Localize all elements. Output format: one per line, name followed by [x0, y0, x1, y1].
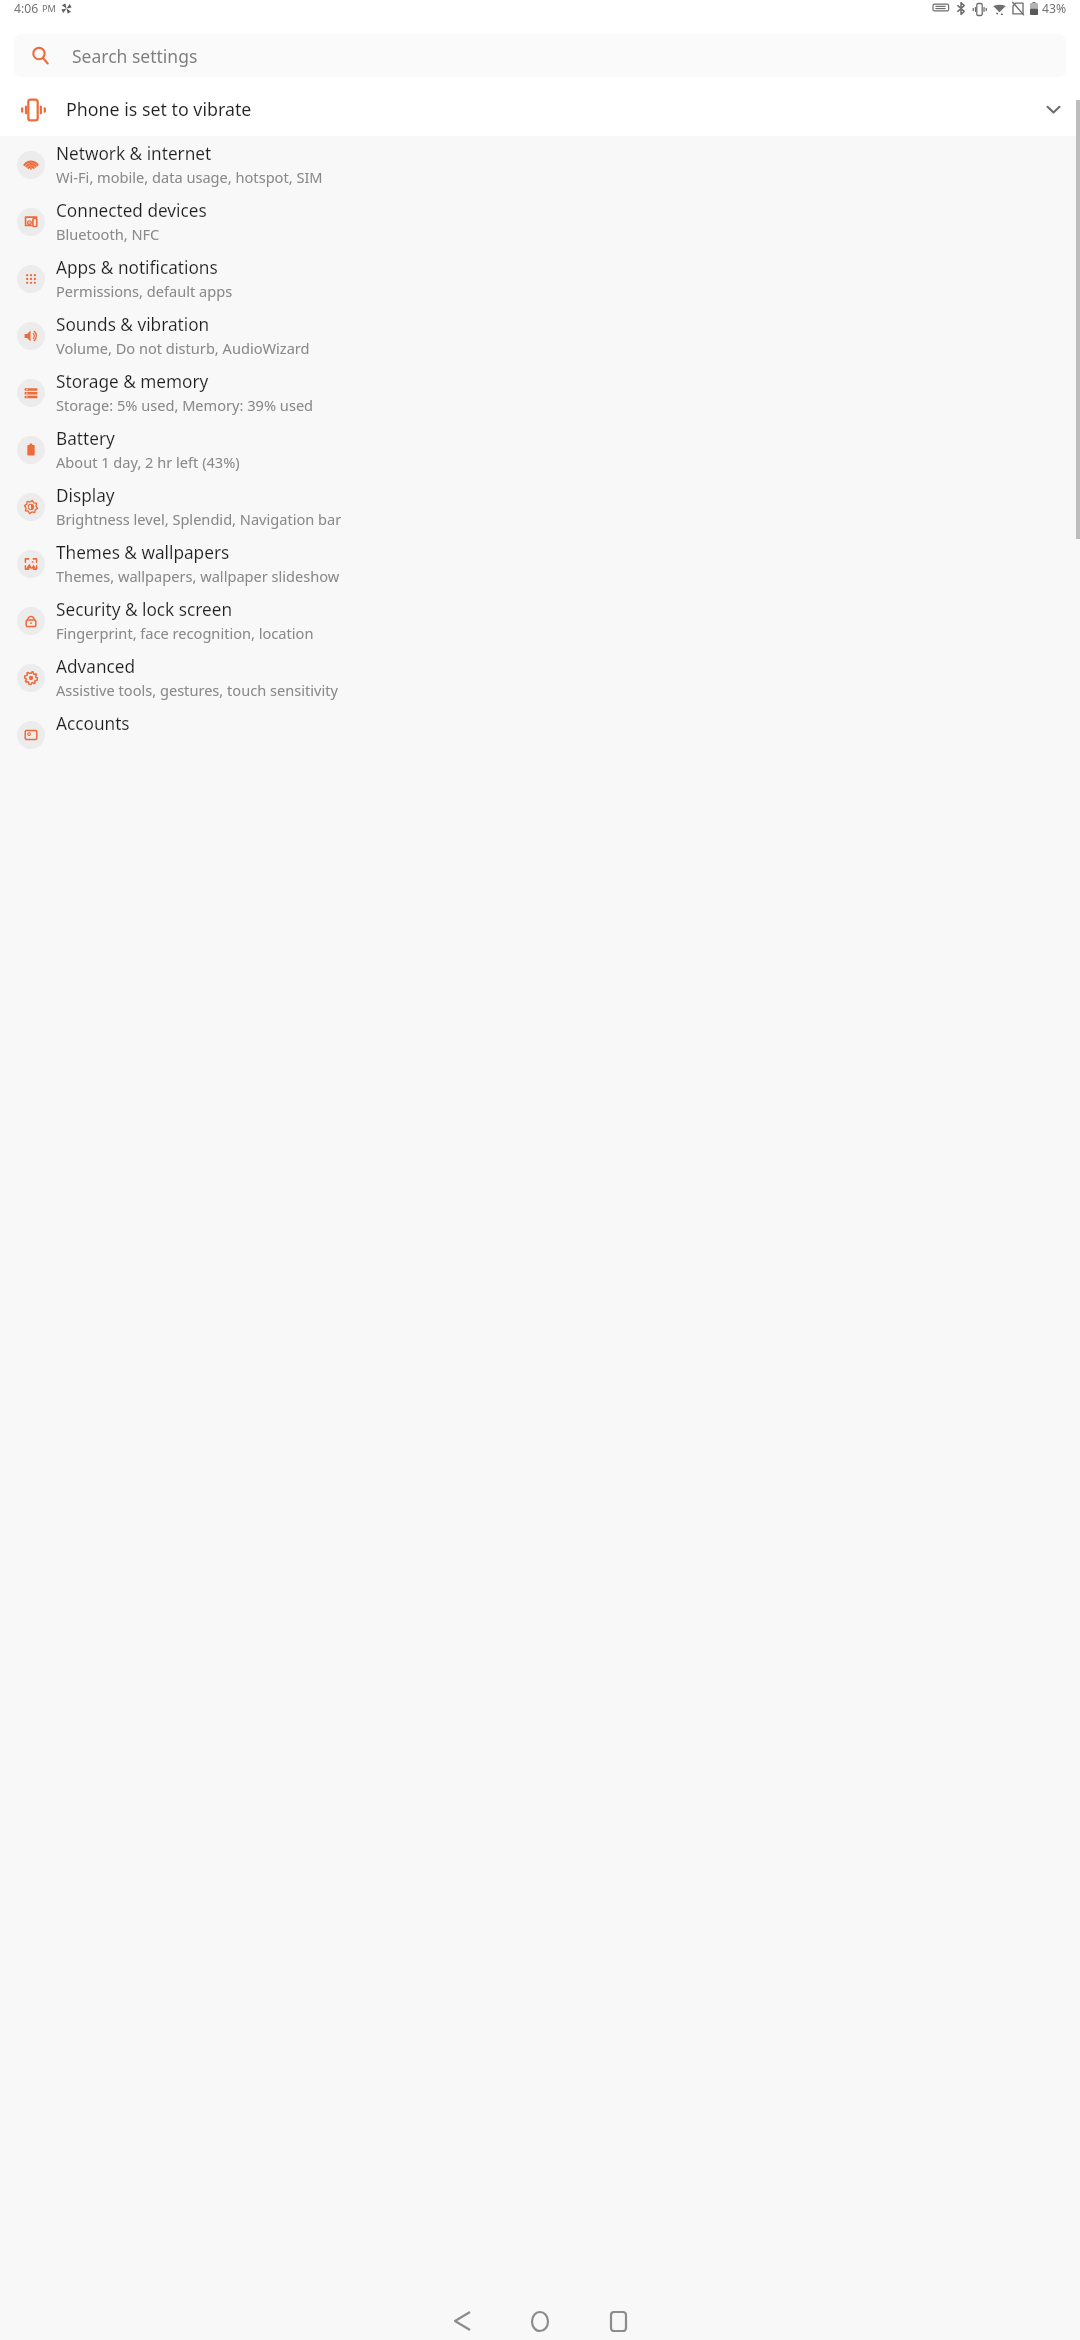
- staticText: About 1 day, 2 hr left (43%): [56, 452, 240, 472]
- staticText: Bluetooth, NFC: [56, 224, 160, 244]
- staticText: Accounts: [56, 712, 130, 735]
- staticText: Sounds & vibration: [56, 313, 210, 336]
- staticText: Advanced: [56, 655, 136, 678]
- button[interactable]: Storage & memory: [0, 364, 1080, 421]
- button[interactable]: Phone is set to vibrate: [0, 81, 1080, 136]
- button[interactable]: Home: [513, 2302, 567, 2340]
- button[interactable]: Themes & wallpapers: [0, 535, 1080, 592]
- staticText: Search settings: [72, 44, 198, 68]
- button[interactable]: Display: [0, 478, 1080, 535]
- button[interactable]: Accounts: [0, 706, 1080, 763]
- staticText: Phone is set to vibrate: [66, 97, 252, 121]
- staticText: Storage: 5% used, Memory: 39% used: [56, 395, 314, 415]
- staticText: Display: [56, 484, 115, 507]
- button[interactable]: Search settings: [14, 34, 1066, 77]
- button[interactable]: Back: [435, 2302, 489, 2340]
- staticText: Brightness level, Splendid, Navigation b…: [56, 509, 342, 529]
- staticText: Permissions, default apps: [56, 281, 233, 301]
- staticText: Wi-Fi, mobile, data usage, hotspot, SIM: [56, 167, 323, 187]
- staticText: 43%: [1042, 0, 1067, 17]
- button[interactable]: Network & internet: [0, 136, 1080, 193]
- button[interactable]: Security & lock screen: [0, 592, 1080, 649]
- staticText: Volume, Do not disturb, AudioWizard: [56, 338, 310, 358]
- staticText: Battery: [56, 427, 115, 450]
- staticText: Storage & memory: [56, 370, 209, 393]
- button[interactable]: Sounds & vibration: [0, 307, 1080, 364]
- staticText: Network & internet: [56, 142, 212, 165]
- staticText: Apps & notifications: [56, 256, 218, 279]
- staticText: PM: [42, 2, 56, 15]
- staticText: Themes & wallpapers: [56, 541, 230, 564]
- button[interactable]: Battery: [0, 421, 1080, 478]
- button[interactable]: Expand: [1036, 92, 1070, 126]
- button[interactable]: Connected devices: [0, 193, 1080, 250]
- button[interactable]: Advanced: [0, 649, 1080, 706]
- button[interactable]: Recents: [591, 2302, 645, 2340]
- staticText: 4:06: [14, 0, 39, 17]
- staticText: Connected devices: [56, 199, 207, 222]
- staticText: Security & lock screen: [56, 598, 233, 621]
- button[interactable]: Apps & notifications: [0, 250, 1080, 307]
- staticText: Assistive tools, gestures, touch sensiti…: [56, 680, 338, 700]
- staticText: Fingerprint, face recognition, location: [56, 623, 314, 643]
- staticText: Themes, wallpapers, wallpaper slideshow: [56, 566, 340, 586]
